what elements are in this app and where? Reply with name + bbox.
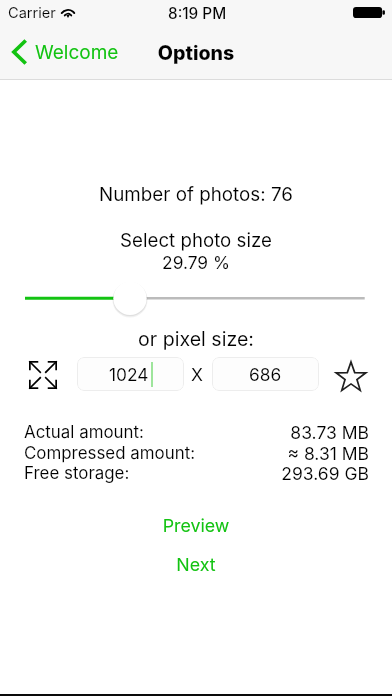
staticText: 83.73 MB [0, 422, 369, 443]
button[interactable]: Preview [0, 513, 392, 541]
staticText: Preview [0, 515, 392, 537]
staticText: Carrier [8, 4, 56, 22]
button[interactable]: 686 [212, 357, 319, 391]
staticText: Compressed amount: [24, 443, 196, 463]
staticText: Options [0, 41, 392, 65]
staticText: ≈ 8.31 MB [0, 443, 369, 464]
staticText: 8:19 PM [168, 4, 227, 23]
button[interactable]: Full size [26, 358, 59, 391]
staticText: 29.79 % [0, 252, 392, 273]
staticText: 686 [249, 364, 282, 385]
button[interactable]: Favorite [334, 360, 367, 393]
staticText: X [191, 364, 203, 385]
staticText: Free storage: [24, 463, 130, 483]
staticText: 293.69 GB [0, 463, 369, 484]
staticText: Next [0, 554, 392, 576]
staticText: Actual amount: [24, 422, 144, 442]
staticText: Number of photos: 76 [0, 183, 392, 206]
staticText: 1024 [109, 364, 149, 385]
button[interactable]: Next [0, 552, 392, 580]
button[interactable]: Welcome [6, 34, 125, 70]
staticText: Welcome [35, 41, 119, 64]
staticText: or pixel size: [0, 327, 392, 351]
button[interactable]: 1024 [77, 357, 184, 391]
staticText: Select photo size [0, 229, 392, 252]
